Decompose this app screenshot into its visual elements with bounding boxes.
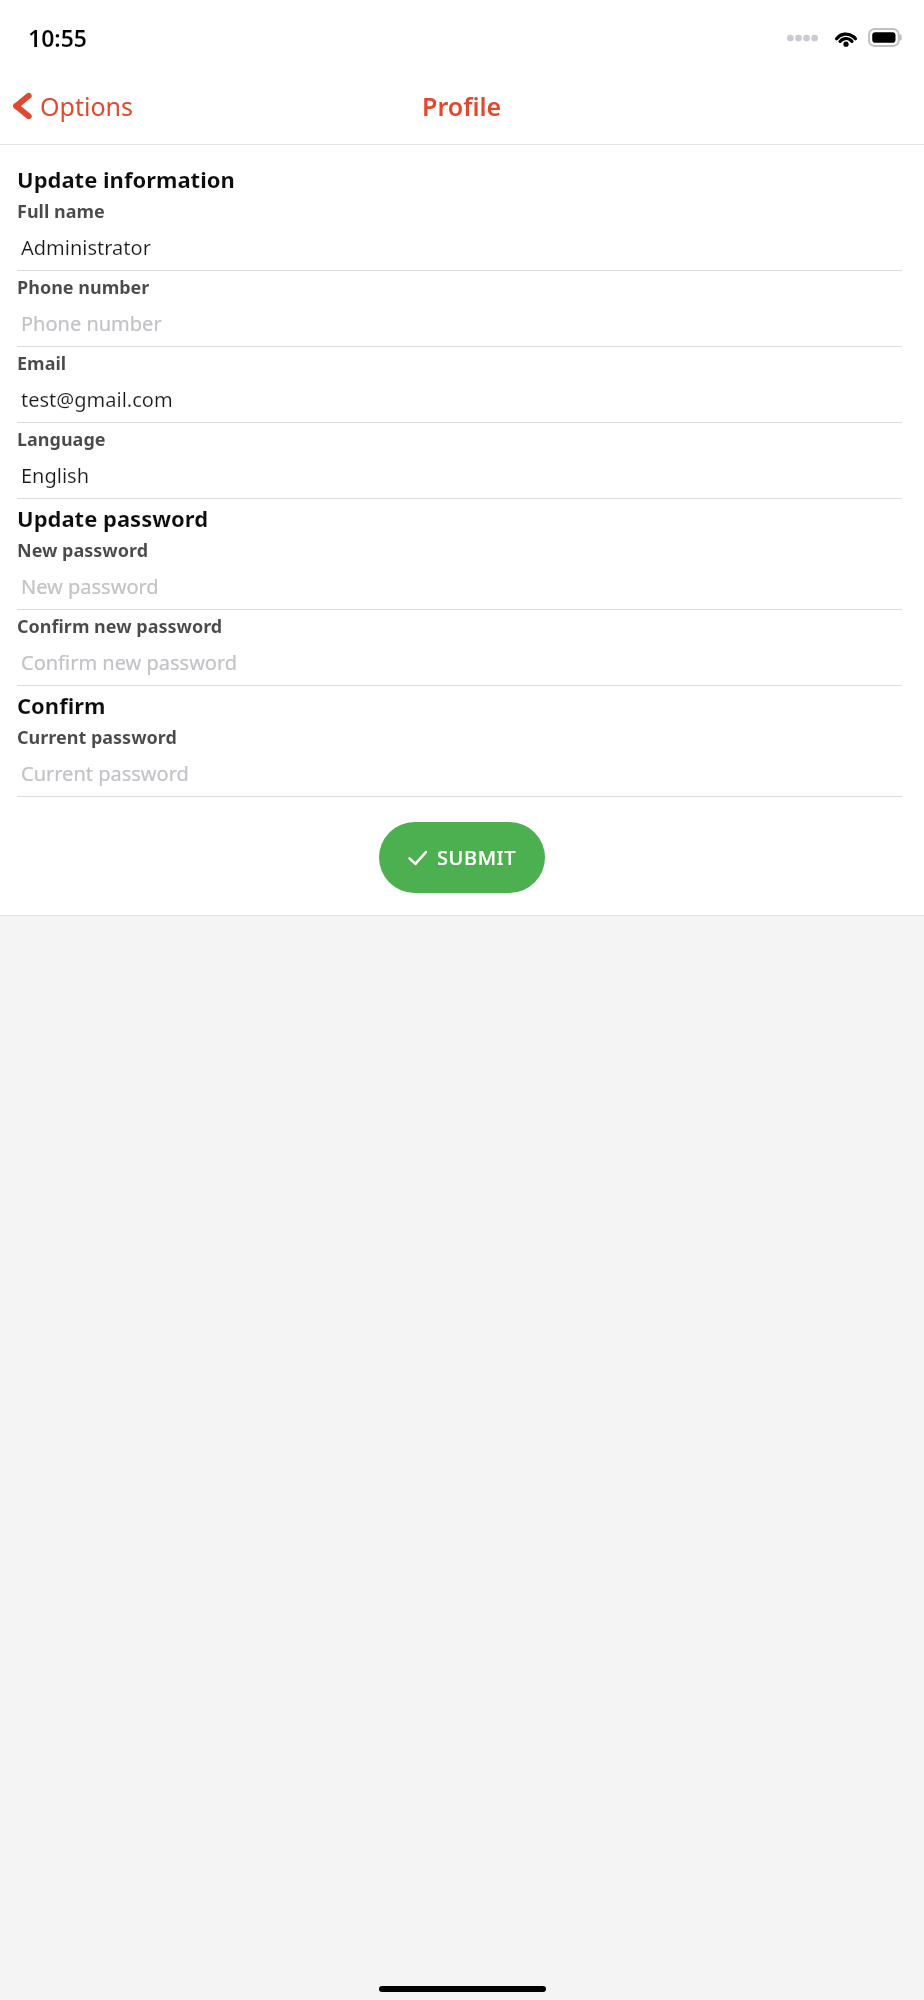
staticText: Update information	[17, 164, 235, 194]
button[interactable]: Current password	[0, 750, 924, 796]
staticText: Current password	[21, 760, 189, 787]
staticText: SUBMIT	[437, 844, 517, 871]
staticText: English	[21, 462, 90, 489]
staticText: Email	[17, 351, 67, 376]
button[interactable]: test@gmail.com	[0, 376, 924, 422]
button[interactable]: SUBMIT	[379, 822, 545, 893]
staticText: Confirm new password	[17, 614, 223, 639]
staticText: Confirm	[17, 690, 106, 720]
staticText: Profile	[422, 89, 502, 123]
staticText: Language	[17, 427, 106, 452]
staticText: Current password	[17, 725, 177, 750]
staticText: New password	[17, 538, 149, 563]
button[interactable]: New password	[0, 563, 924, 609]
button[interactable]: Confirm new password	[0, 639, 924, 685]
button[interactable]: Options	[10, 89, 133, 123]
staticText: test@gmail.com	[21, 386, 173, 413]
staticText: Phone number	[21, 310, 162, 337]
staticText: Confirm new password	[21, 649, 238, 676]
staticText: Update password	[17, 503, 209, 533]
button[interactable]: Phone number	[0, 300, 924, 346]
staticText: Phone number	[17, 275, 150, 300]
staticText: 10:55	[28, 22, 87, 53]
staticText: New password	[21, 573, 159, 600]
button[interactable]: Administrator	[0, 224, 924, 270]
staticText: Administrator	[21, 234, 151, 261]
staticText: Options	[40, 89, 133, 123]
staticText: Full name	[17, 199, 105, 224]
button[interactable]: English	[0, 452, 924, 498]
